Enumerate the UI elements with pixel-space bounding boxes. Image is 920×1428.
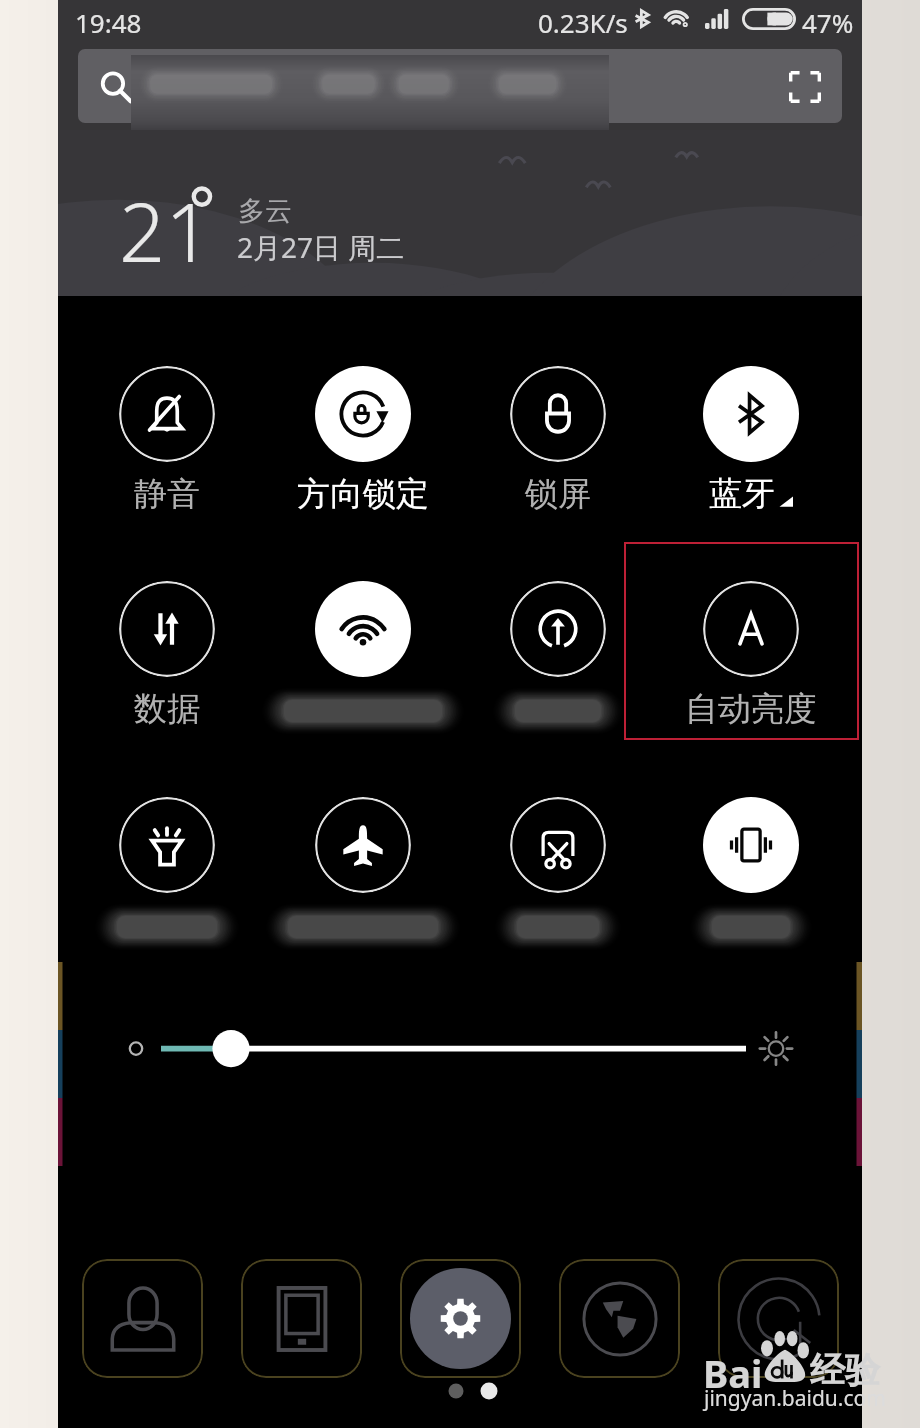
button[interactable]: Wi-Fi <box>273 577 453 734</box>
staticText: 0.23K/s <box>538 5 628 40</box>
button[interactable]: Lock screen <box>468 362 648 515</box>
staticText: 方向锁定 <box>297 473 429 515</box>
staticText: 自动亮度 <box>685 688 817 730</box>
staticText: 21 <box>119 175 212 285</box>
button[interactable]: Hotspot <box>468 577 648 734</box>
staticText: 蓝牙 <box>709 473 775 515</box>
button[interactable]: Auto brightness <box>661 577 841 730</box>
staticText: Bai <box>703 1347 763 1399</box>
other: Scan code <box>789 71 821 103</box>
button[interactable]: Mobile data <box>77 577 257 730</box>
button[interactable]: Messages <box>241 1259 362 1378</box>
button[interactable]: Silent <box>77 362 257 515</box>
button[interactable]: Screenshot <box>468 793 648 950</box>
staticText: 19:48 <box>75 5 142 40</box>
button[interactable]: Flashlight <box>77 793 257 950</box>
button[interactable]: Bluetooth <box>661 362 841 515</box>
staticText: 多云 <box>238 194 292 228</box>
button[interactable]: Rotation lock <box>273 362 453 515</box>
button[interactable]: Airplane mode <box>273 793 453 950</box>
button[interactable]: Vibrate <box>661 793 841 950</box>
staticText: 经验 <box>810 1348 880 1392</box>
staticText: 2月27日 周二 <box>237 228 405 266</box>
staticText: jingyan.baidu.com <box>704 1384 886 1413</box>
button[interactable]: Settings <box>400 1259 521 1378</box>
staticText: 静音 <box>134 473 200 515</box>
staticText: 47% <box>802 5 854 40</box>
button[interactable]: Search <box>78 49 842 123</box>
staticText: 数据 <box>134 688 200 730</box>
staticText: 锁屏 <box>525 473 591 515</box>
button[interactable]: Contacts <box>82 1259 203 1378</box>
button[interactable]: Camera <box>718 1259 839 1378</box>
button[interactable]: Browser <box>559 1259 680 1378</box>
